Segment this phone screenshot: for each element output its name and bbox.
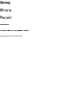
staticText: Данные для расчёта вклада xyxy=(0,35,22,37)
staticText: Расчёт xyxy=(0,15,12,20)
staticText: Результат xyxy=(0,23,9,25)
staticText: Построение доходности xyxy=(0,28,29,32)
staticText: Вклад xyxy=(0,0,10,5)
staticText: Итоги xyxy=(0,8,11,12)
